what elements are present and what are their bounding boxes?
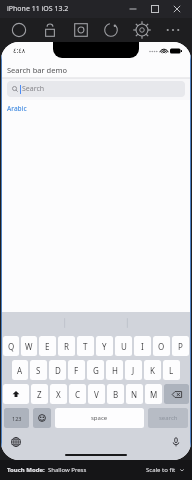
button[interactable]: S bbox=[30, 360, 47, 380]
staticText: N bbox=[131, 389, 138, 400]
staticText: O bbox=[158, 341, 165, 352]
button[interactable]: R bbox=[58, 336, 75, 356]
staticText: D bbox=[55, 365, 61, 376]
staticText: W bbox=[25, 341, 33, 352]
staticText: C bbox=[75, 389, 81, 400]
staticText: ٤:٤٨ bbox=[13, 46, 26, 55]
button[interactable]: B bbox=[107, 384, 124, 404]
button[interactable]: Minimize bbox=[122, 0, 144, 18]
staticText: V bbox=[94, 389, 99, 400]
button[interactable]: Emoji bbox=[33, 408, 51, 428]
button[interactable]: T bbox=[77, 336, 94, 356]
button[interactable]: Close bbox=[166, 0, 188, 18]
button[interactable]: E bbox=[39, 336, 56, 356]
button[interactable]: C bbox=[69, 384, 86, 404]
button[interactable]: N bbox=[126, 384, 143, 404]
button[interactable]: F bbox=[68, 360, 85, 380]
staticText: K bbox=[150, 365, 155, 376]
staticText: P bbox=[178, 341, 183, 352]
staticText: space bbox=[91, 414, 108, 422]
button[interactable]: I bbox=[134, 336, 151, 356]
staticText: 123 bbox=[12, 415, 22, 422]
button[interactable]: search bbox=[148, 408, 188, 428]
button[interactable]: Dictation bbox=[169, 435, 183, 449]
staticText: R bbox=[64, 341, 69, 352]
button[interactable]: K bbox=[144, 360, 161, 380]
staticText: A bbox=[17, 365, 23, 376]
staticText: F bbox=[74, 365, 79, 376]
button[interactable]: Y bbox=[96, 336, 113, 356]
button[interactable]: A bbox=[12, 360, 28, 380]
staticText: S bbox=[36, 365, 41, 376]
staticText: Search bbox=[22, 84, 45, 94]
button[interactable]: O bbox=[153, 336, 170, 356]
button[interactable]: Settings bbox=[130, 18, 154, 42]
button[interactable]: W bbox=[21, 336, 37, 356]
staticText: Z bbox=[37, 389, 42, 400]
staticText: Shallow Press bbox=[48, 466, 87, 474]
button[interactable]: Rotate bbox=[99, 18, 123, 42]
button[interactable]: Backspace bbox=[164, 384, 189, 404]
button[interactable]: space bbox=[55, 408, 144, 428]
staticText: T bbox=[83, 341, 88, 352]
button[interactable]: Maximize bbox=[144, 0, 166, 18]
staticText: M bbox=[150, 389, 158, 400]
staticText: I bbox=[141, 341, 144, 352]
staticText: Q bbox=[8, 341, 15, 352]
staticText: J bbox=[132, 365, 135, 376]
staticText: U bbox=[121, 341, 127, 352]
staticText: Arabic bbox=[7, 104, 27, 113]
button[interactable]: Q bbox=[3, 336, 19, 356]
staticText: L bbox=[169, 365, 174, 376]
button[interactable]: Z bbox=[31, 384, 48, 404]
button[interactable]: H bbox=[106, 360, 123, 380]
button[interactable]: 123 bbox=[4, 408, 29, 428]
button[interactable]: V bbox=[88, 384, 105, 404]
staticText: Search bar demo bbox=[7, 65, 67, 75]
staticText: E bbox=[45, 341, 50, 352]
button[interactable]: G bbox=[87, 360, 104, 380]
button[interactable]: X bbox=[50, 384, 67, 404]
staticText: X bbox=[56, 389, 61, 400]
staticText: Scale to fit bbox=[146, 466, 176, 474]
staticText: G bbox=[93, 365, 99, 376]
staticText: iPhone 11 iOS 13.2 bbox=[7, 4, 69, 14]
button[interactable]: Lock bbox=[38, 18, 62, 42]
staticText: Touch Mode: bbox=[7, 466, 45, 474]
button[interactable]: U bbox=[115, 336, 132, 356]
button[interactable]: P bbox=[172, 336, 189, 356]
button[interactable]: Scale to fit bbox=[144, 466, 187, 474]
button[interactable]: More options bbox=[161, 18, 185, 42]
button[interactable]: Screenshot bbox=[69, 18, 93, 42]
button[interactable]: M bbox=[145, 384, 162, 404]
button[interactable]: D bbox=[49, 360, 66, 380]
staticText: Y bbox=[102, 341, 107, 352]
staticText: B bbox=[113, 389, 119, 400]
staticText: search bbox=[159, 414, 178, 422]
button[interactable]: Home bbox=[7, 18, 31, 42]
button[interactable]: Arabic bbox=[1, 100, 191, 116]
staticText: H bbox=[112, 365, 118, 376]
button[interactable]: Search bbox=[7, 81, 185, 97]
button[interactable]: L bbox=[163, 360, 180, 380]
button[interactable]: Shift bbox=[3, 384, 29, 404]
button[interactable]: J bbox=[125, 360, 142, 380]
button[interactable]: Change keyboard language bbox=[9, 435, 23, 449]
